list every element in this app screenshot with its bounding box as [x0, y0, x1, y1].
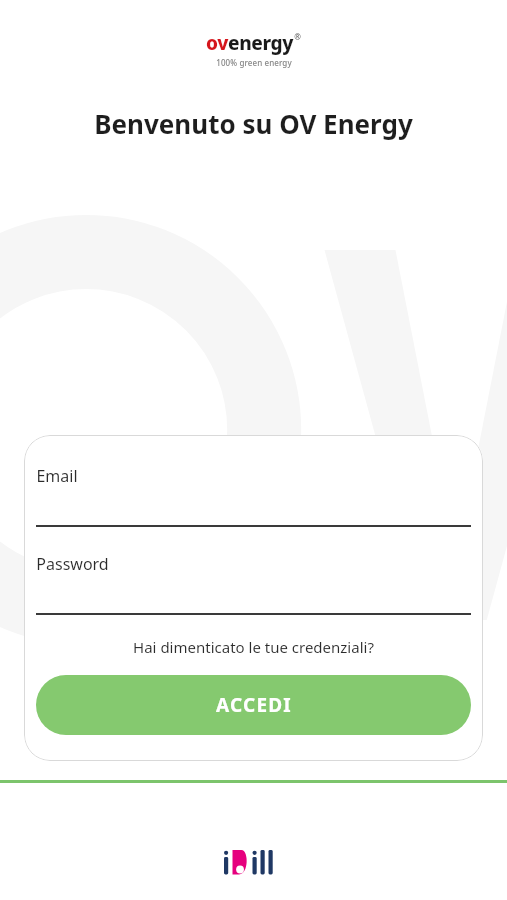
button[interactable]: ACCEDI [36, 675, 471, 735]
staticText: energy [228, 30, 293, 56]
button[interactable]: Email [36, 465, 471, 527]
button[interactable]: Password [36, 553, 471, 615]
staticText: Password [36, 553, 109, 575]
staticText: Benvenuto su OV Energy [94, 106, 413, 141]
staticText: ACCEDI [216, 692, 292, 718]
staticText: Email [36, 465, 78, 487]
other: ibill [222, 848, 286, 878]
staticText: ov [206, 30, 228, 56]
button[interactable]: Hai dimenticato le tue credenziali? [36, 637, 471, 657]
staticText: ® [294, 31, 301, 42]
staticText: Hai dimenticato le tue credenziali? [133, 637, 374, 657]
staticText: 100% green energy [216, 57, 292, 68]
